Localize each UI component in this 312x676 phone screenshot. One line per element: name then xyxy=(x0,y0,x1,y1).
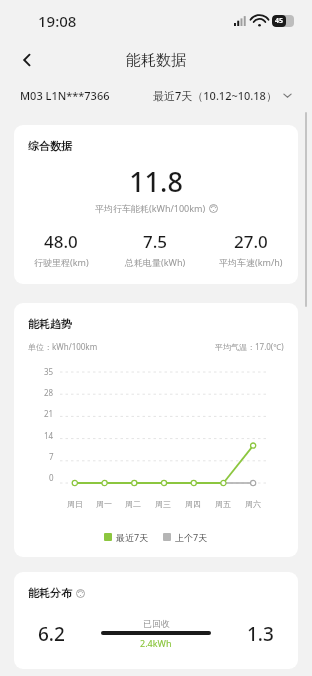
staticText: 已回收 xyxy=(143,618,170,629)
staticText: 7 xyxy=(49,451,54,462)
staticText: 48.0 xyxy=(44,230,78,253)
staticText: 35 xyxy=(44,366,54,377)
staticText: 综合数据 xyxy=(28,139,72,153)
staticText: 7.5 xyxy=(143,230,168,253)
staticText: 28 xyxy=(44,387,54,398)
button[interactable]: M03 L1N***7366 xyxy=(20,88,110,103)
staticText: 11.8 xyxy=(14,163,298,200)
staticText: 能耗分布 xyxy=(28,586,72,600)
staticText: 总耗电量(kWh) xyxy=(125,256,186,268)
staticText: 平均行车能耗(kWh/100km) xyxy=(95,202,206,214)
staticText: 能耗数据 xyxy=(126,51,186,70)
staticText: 平均气温：17.0(℃) xyxy=(215,341,284,352)
staticText: 21 xyxy=(44,408,54,419)
staticText: 单位：kWh/100km xyxy=(28,341,98,352)
staticText: 能耗趋势 xyxy=(28,317,72,331)
staticText: 0 xyxy=(49,472,54,483)
staticText: 2.4kWh xyxy=(140,637,172,649)
staticText: 上个7天 xyxy=(175,531,208,543)
staticText: 周二 xyxy=(125,499,141,509)
staticText: 周五 xyxy=(215,499,231,509)
staticText: 19:08 xyxy=(38,11,77,31)
staticText: 周三 xyxy=(155,499,171,509)
staticText: 周六 xyxy=(245,499,261,509)
staticText: 14 xyxy=(44,430,54,441)
button[interactable]: 最近7天（10.12~10.18） xyxy=(153,88,292,103)
staticText: 27.0 xyxy=(234,230,268,253)
staticText: 最近7天 xyxy=(116,531,149,543)
staticText: 最近7天（10.12~10.18） xyxy=(153,88,277,103)
staticText: 45 xyxy=(275,16,284,26)
staticText: 周四 xyxy=(185,499,201,509)
staticText: 周一 xyxy=(96,499,112,509)
staticText: 周日 xyxy=(67,499,83,509)
button[interactable]: Back xyxy=(10,43,44,77)
staticText: 6.2 xyxy=(38,621,65,647)
staticText: 1.3 xyxy=(247,621,274,647)
staticText: 平均车速(km/h) xyxy=(219,256,283,268)
staticText: 行驶里程(km) xyxy=(34,256,89,268)
